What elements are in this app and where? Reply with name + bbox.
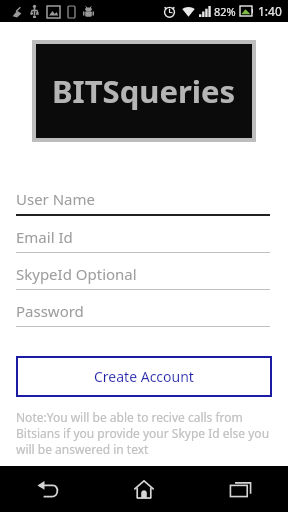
staticText: Email Id	[16, 227, 73, 247]
staticText: User Name	[16, 189, 96, 209]
staticText: SkypeId Optional	[16, 264, 137, 284]
staticText: 1:40	[258, 3, 282, 19]
staticText: Note:You will be able to recive calls fr…	[16, 409, 274, 457]
staticText: 82%	[214, 4, 236, 19]
staticText: BITSqueries	[52, 70, 236, 112]
button[interactable]: User Name	[16, 184, 270, 222]
button[interactable]: Email Id	[16, 222, 270, 259]
button[interactable]: Password	[16, 296, 270, 333]
button[interactable]: Back	[0, 466, 96, 512]
button[interactable]: SkypeId Optional	[16, 259, 270, 296]
button[interactable]: Recent apps	[192, 466, 288, 512]
button[interactable]: Create Account	[16, 356, 272, 397]
staticText: Create Account	[94, 367, 194, 386]
button[interactable]: Home	[96, 466, 192, 512]
staticText: Password	[16, 301, 84, 321]
